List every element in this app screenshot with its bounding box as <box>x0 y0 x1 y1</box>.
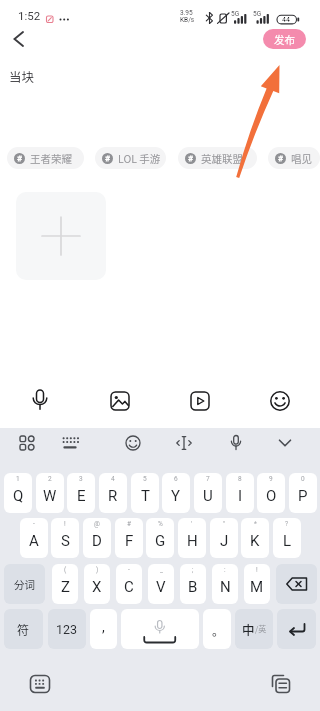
staticText: Q <box>13 487 24 505</box>
button[interactable] <box>266 387 294 415</box>
button[interactable]: 5 <box>131 473 159 513</box>
button[interactable]: ' <box>178 518 206 558</box>
button[interactable]: 发布 <box>263 29 306 49</box>
button[interactable]: 7 <box>194 473 222 513</box>
button[interactable]: # <box>268 147 320 169</box>
button[interactable]: # <box>115 518 143 558</box>
staticText: U <box>203 487 213 505</box>
staticText: X <box>92 578 102 596</box>
button[interactable]: 分词 <box>4 564 45 604</box>
button[interactable]: - <box>20 518 48 558</box>
button[interactable] <box>171 430 197 456</box>
button[interactable]: 1 <box>4 473 32 513</box>
button[interactable]: ! <box>244 564 270 604</box>
button[interactable] <box>186 387 214 415</box>
button[interactable]: 中 <box>235 609 273 649</box>
button[interactable] <box>26 387 54 415</box>
staticText: , <box>102 619 105 635</box>
button[interactable]: , <box>90 609 117 649</box>
staticText: # <box>17 154 22 163</box>
button[interactable]: ( <box>52 564 78 604</box>
button[interactable] <box>6 29 32 55</box>
button[interactable] <box>276 564 317 604</box>
staticText: - <box>128 566 130 574</box>
staticText: 5G <box>231 10 240 18</box>
staticText: 44 <box>282 16 290 24</box>
button[interactable]: * <box>241 518 269 558</box>
button[interactable]: # <box>178 147 257 169</box>
button[interactable] <box>28 672 52 696</box>
staticText: : <box>224 566 226 574</box>
button[interactable]: 9 <box>257 473 285 513</box>
staticText: G <box>155 532 166 550</box>
staticText: 1 <box>16 475 20 483</box>
button[interactable]: # <box>95 147 166 169</box>
button[interactable]: 4 <box>99 473 127 513</box>
button[interactable]: ? <box>273 518 301 558</box>
staticText: KB/s <box>180 16 195 24</box>
staticText: LOL 手游 <box>118 151 161 166</box>
staticText: N <box>220 578 231 596</box>
button[interactable]: 123 <box>48 609 86 649</box>
button[interactable]: ! <box>51 518 79 558</box>
staticText: 8 <box>238 475 242 483</box>
staticText: F <box>125 532 134 550</box>
button[interactable] <box>268 671 292 695</box>
staticText: K <box>250 532 260 550</box>
staticText: 2 <box>48 475 52 483</box>
button[interactable]: @ <box>83 518 111 558</box>
button[interactable]: # <box>7 147 84 169</box>
button[interactable] <box>57 430 83 456</box>
staticText: _ <box>160 566 163 574</box>
button[interactable]: - <box>116 564 142 604</box>
button[interactable] <box>121 609 199 649</box>
staticText: 6 <box>174 475 178 483</box>
button[interactable] <box>223 430 249 456</box>
staticText: E <box>77 487 86 505</box>
staticText: D <box>92 532 102 550</box>
staticText: # <box>188 154 193 163</box>
button[interactable]: 。 <box>203 609 231 649</box>
staticText: 123 <box>56 622 78 637</box>
button[interactable] <box>272 430 298 456</box>
button[interactable]: 8 <box>226 473 254 513</box>
button[interactable] <box>277 609 316 649</box>
staticText: Y <box>171 487 181 505</box>
button[interactable] <box>106 387 134 415</box>
button[interactable]: 0 <box>289 473 317 513</box>
staticText: " <box>223 520 226 528</box>
button[interactable]: 6 <box>162 473 190 513</box>
button[interactable]: ) <box>84 564 110 604</box>
staticText: ) <box>96 566 99 574</box>
staticText: # <box>105 154 110 163</box>
staticText: S <box>61 532 70 550</box>
button[interactable]: " <box>210 518 238 558</box>
staticText: ! <box>64 520 66 528</box>
staticText: 5G <box>253 10 262 18</box>
button[interactable]: 3 <box>67 473 95 513</box>
button[interactable] <box>14 430 40 456</box>
button[interactable] <box>16 192 106 280</box>
button[interactable]: 符 <box>4 609 43 649</box>
button[interactable]: : <box>212 564 238 604</box>
staticText: 当块 <box>9 67 35 85</box>
staticText: 5 <box>143 475 147 483</box>
staticText: J <box>220 532 229 550</box>
staticText: H <box>187 532 198 550</box>
button[interactable]: % <box>146 518 174 558</box>
staticText: A <box>29 532 39 550</box>
button[interactable]: 2 <box>36 473 64 513</box>
staticText: T <box>141 487 150 505</box>
staticText: W <box>43 487 57 505</box>
button[interactable] <box>120 430 146 456</box>
staticText: 1:52 <box>18 9 41 22</box>
button[interactable]: ; <box>180 564 206 604</box>
staticText: ' <box>191 520 193 528</box>
staticText: ; <box>192 566 194 574</box>
staticText: O <box>266 487 277 505</box>
staticText: M <box>250 578 264 596</box>
button[interactable]: _ <box>148 564 174 604</box>
staticText: @ <box>94 520 100 528</box>
staticText: % <box>158 520 163 528</box>
staticText: # <box>127 520 132 528</box>
